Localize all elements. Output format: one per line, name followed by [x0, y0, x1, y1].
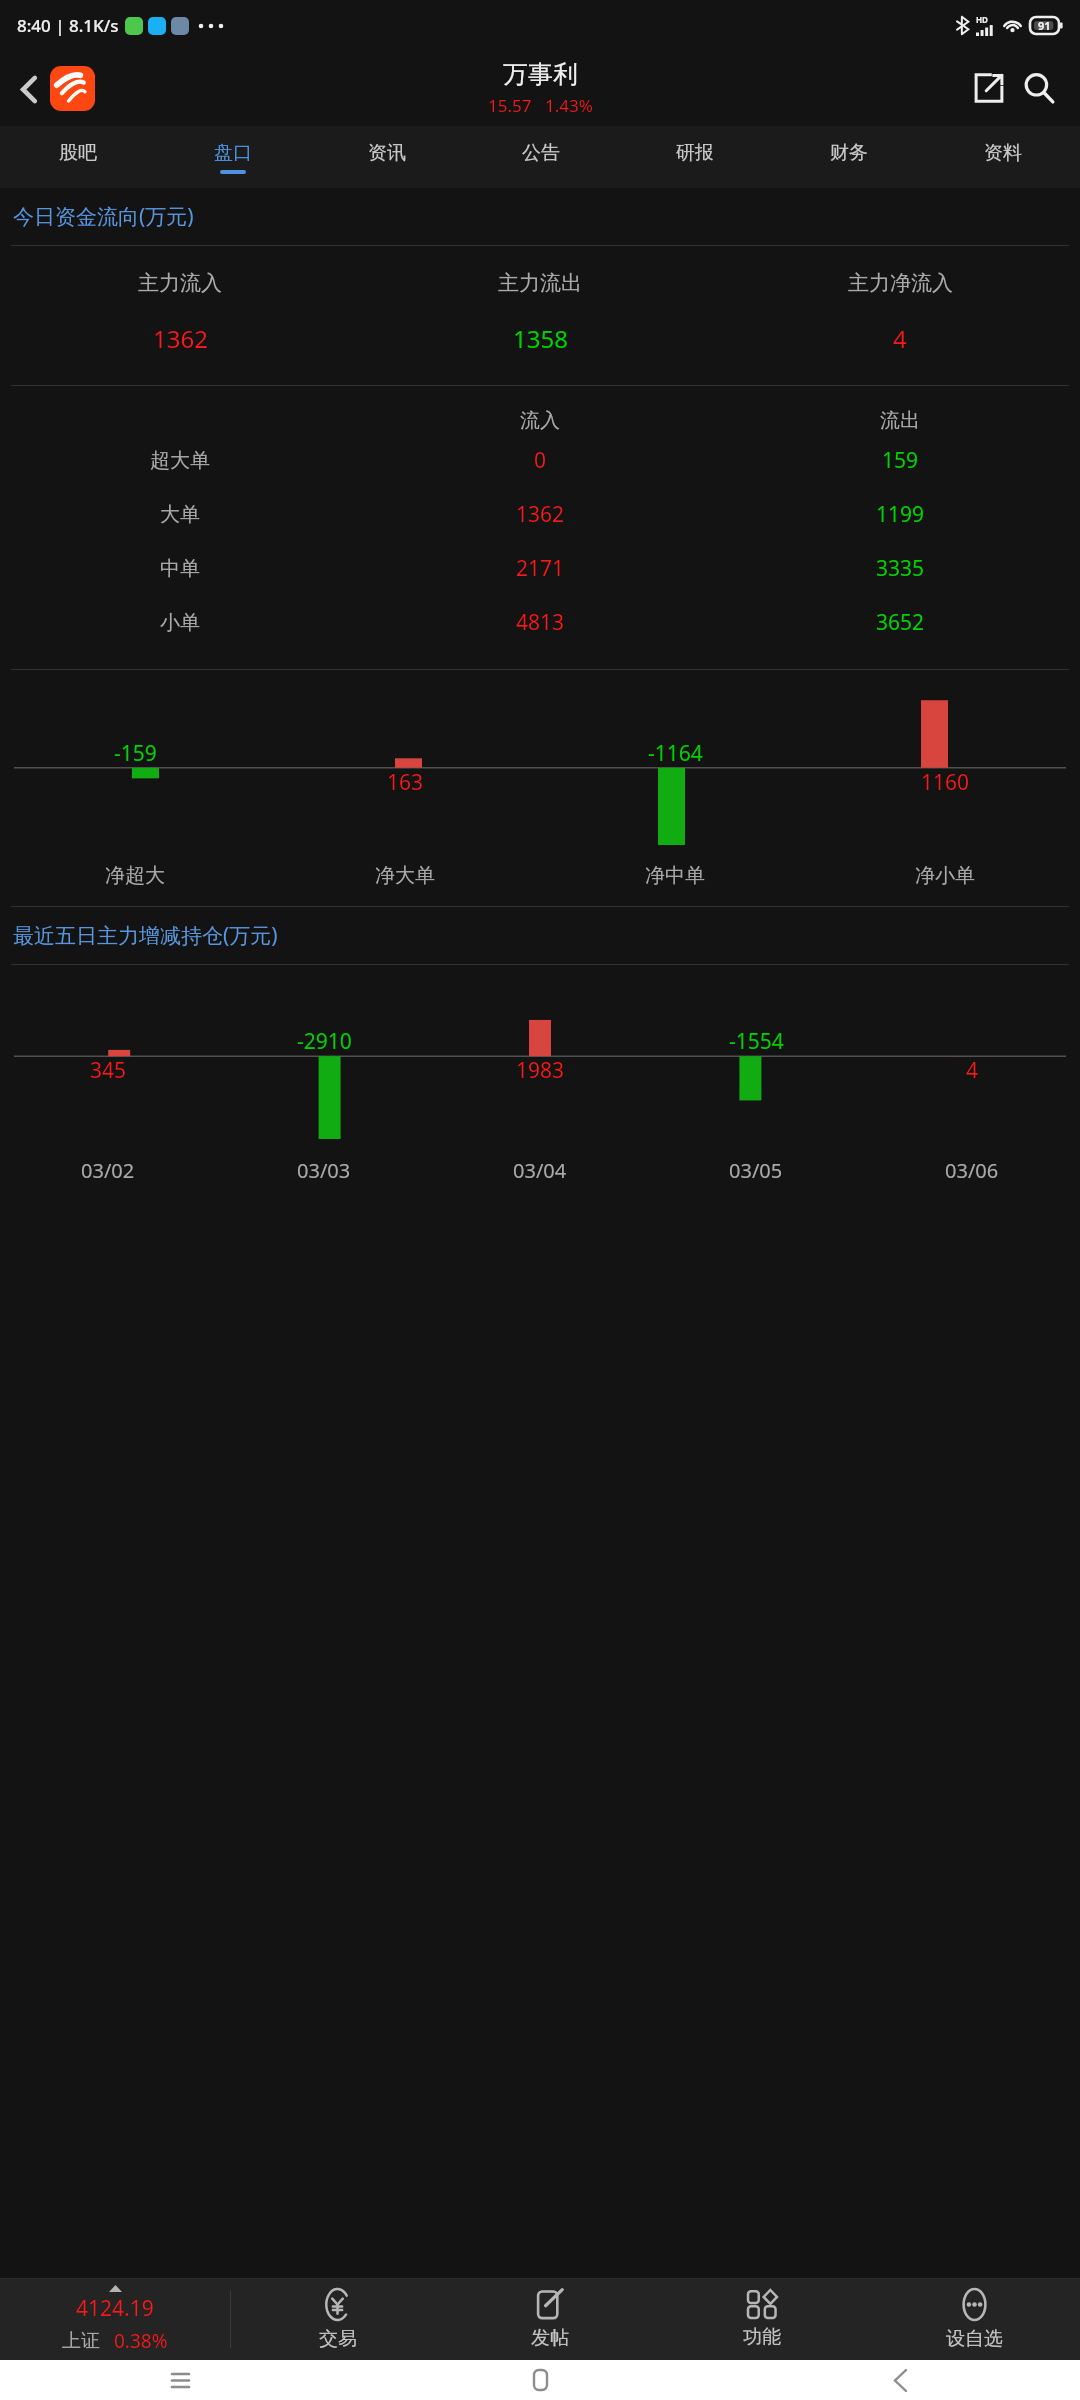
staticText: 净小单: [915, 863, 975, 888]
staticText: 3335: [876, 554, 925, 583]
staticText: 流出: [880, 408, 920, 433]
staticText: 03/02: [81, 1157, 135, 1184]
staticText: 股吧: [59, 141, 97, 165]
button[interactable]: Home: [518, 2360, 562, 2400]
button[interactable]: 财务: [772, 126, 926, 188]
staticText: 交易: [319, 2327, 357, 2351]
button[interactable]: Share: [964, 63, 1014, 113]
staticText: 流入: [520, 408, 560, 433]
staticText: 1362: [516, 500, 565, 529]
button[interactable]: 资料: [926, 126, 1080, 188]
staticText: 2171: [516, 554, 565, 583]
button[interactable]: 发帖: [444, 2278, 656, 2360]
staticText: 91: [1038, 18, 1051, 33]
staticText: -159: [114, 739, 157, 768]
button[interactable]: Search: [1014, 63, 1064, 113]
staticText: 03/06: [945, 1157, 999, 1184]
staticText: -2910: [297, 1027, 352, 1056]
staticText: -1164: [648, 739, 703, 768]
button[interactable]: 盘口: [155, 126, 310, 188]
staticText: 盘口: [214, 141, 252, 165]
staticText: 8:40 | 8.1K/s: [17, 14, 119, 37]
button[interactable]: 小单: [0, 595, 1080, 649]
staticText: 资讯: [368, 141, 406, 165]
staticText: 03/03: [297, 1157, 351, 1184]
staticText: 1983: [516, 1056, 565, 1085]
button[interactable]: 股吧: [0, 126, 155, 188]
button[interactable]: 资讯: [310, 126, 464, 188]
staticText: 159: [882, 446, 919, 475]
staticText: 03/04: [513, 1157, 567, 1184]
button[interactable]: Recents: [158, 2360, 202, 2400]
button[interactable]: 研报: [618, 126, 772, 188]
staticText: 1160: [921, 768, 970, 797]
staticText: 1.43%: [545, 94, 593, 117]
staticText: 1362: [153, 322, 208, 355]
staticText: 超大单: [150, 448, 210, 473]
staticText: 主力净流入: [848, 270, 953, 296]
staticText: 净超大: [105, 863, 165, 888]
staticText: 财务: [830, 141, 868, 165]
staticText: 345: [90, 1056, 127, 1085]
staticText: 中单: [160, 556, 200, 581]
button[interactable]: 大单: [0, 487, 1080, 541]
staticText: -1554: [729, 1027, 784, 1056]
button[interactable]: 超大单: [0, 433, 1080, 487]
button[interactable]: 中单: [0, 541, 1080, 595]
staticText: HD: [976, 14, 988, 25]
staticText: 4124.19: [76, 2294, 154, 2323]
staticText: 资料: [984, 141, 1022, 165]
staticText: 功能: [743, 2325, 781, 2349]
staticText: 03/05: [729, 1157, 783, 1184]
staticText: 设自选: [946, 2327, 1003, 2351]
staticText: 1199: [876, 500, 925, 529]
staticText: 今日资金流向(万元): [13, 202, 194, 231]
button[interactable]: Back: [878, 2360, 922, 2400]
button[interactable]: 设自选: [868, 2278, 1080, 2360]
button[interactable]: Back: [8, 68, 50, 110]
staticText: 0: [534, 446, 547, 475]
button[interactable]: 功能: [656, 2278, 868, 2360]
staticText: 最近五日主力增减持仓(万元): [13, 921, 278, 950]
button[interactable]: THS logo: [50, 66, 95, 111]
staticText: 发帖: [531, 2326, 569, 2350]
staticText: 4: [966, 1056, 979, 1085]
staticText: 0.38%: [114, 2328, 168, 2354]
staticText: 163: [387, 768, 424, 797]
staticText: 上证: [62, 2329, 100, 2353]
staticText: 公告: [522, 141, 560, 165]
staticText: 4813: [516, 608, 565, 637]
staticText: 研报: [676, 141, 714, 165]
staticText: 4: [893, 322, 907, 355]
button[interactable]: 4124.19: [0, 2278, 230, 2360]
staticText: 净中单: [645, 863, 705, 888]
staticText: 15.57: [488, 94, 532, 117]
button[interactable]: 交易: [231, 2278, 444, 2360]
staticText: 小单: [160, 610, 200, 635]
staticText: 大单: [160, 502, 200, 527]
staticText: 万事利: [503, 59, 578, 90]
staticText: 3652: [876, 608, 925, 637]
staticText: 主力流入: [138, 270, 222, 296]
staticText: 净大单: [375, 863, 435, 888]
staticText: 主力流出: [498, 270, 582, 296]
staticText: 1358: [513, 322, 568, 355]
button[interactable]: 公告: [464, 126, 618, 188]
